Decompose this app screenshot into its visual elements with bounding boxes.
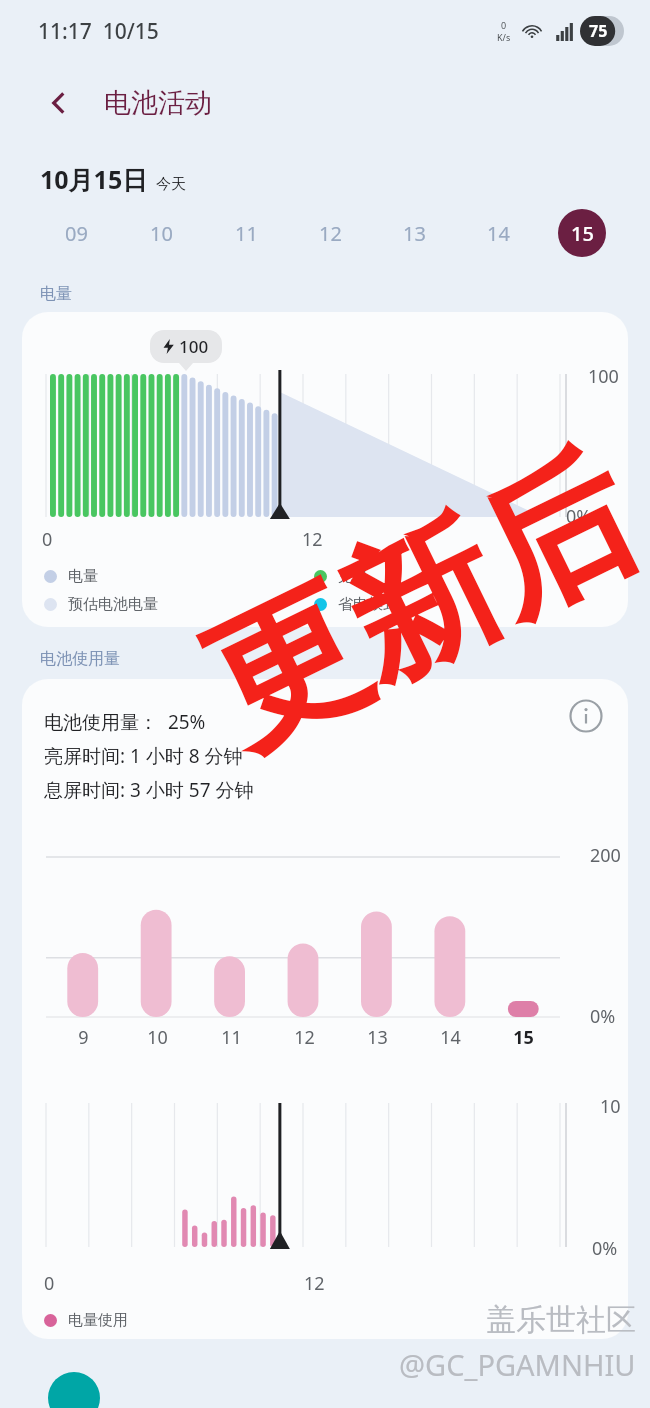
staticText: 更新后 — [177, 419, 650, 786]
staticText: 10月15日 — [40, 162, 148, 196]
staticText: 100 — [179, 335, 209, 358]
staticText: 息屏时间: 3 小时 57 分钟 — [44, 777, 254, 803]
staticText: 75 — [589, 20, 608, 42]
button[interactable]: 15 — [540, 202, 624, 264]
staticText: 0% — [566, 504, 592, 529]
staticText: 12 — [319, 220, 342, 247]
staticText: 电量 — [40, 284, 72, 304]
staticText: 预估电池电量 — [68, 595, 158, 614]
staticText: 亮屏时间: 1 小时 8 分钟 — [44, 743, 243, 769]
button[interactable]: 100 — [22, 312, 628, 627]
staticText: 充电 — [338, 567, 368, 586]
staticText: 15 — [513, 1025, 534, 1050]
staticText: 10 — [147, 1025, 168, 1050]
staticText: 9 — [78, 1025, 89, 1050]
staticText: 14 — [487, 220, 510, 247]
staticText: 11:17 10/15 — [38, 17, 159, 46]
button[interactable]: 14 — [456, 202, 540, 264]
staticText: 12 — [294, 1025, 315, 1050]
button[interactable]: 12 — [288, 202, 372, 264]
staticText: 盖乐世社区 — [486, 1301, 636, 1339]
staticText: 电量 — [68, 567, 98, 586]
staticText: 今天 — [156, 175, 186, 194]
staticText: 电池活动 — [104, 86, 212, 120]
staticText: 10 — [150, 220, 173, 247]
staticText: 电池使用量 — [40, 649, 120, 669]
staticText: 0 — [44, 1271, 55, 1296]
button[interactable]: Info — [566, 696, 606, 736]
staticText: K/s — [497, 31, 511, 43]
button[interactable]: 13 — [372, 202, 456, 264]
staticText: 14 — [440, 1025, 461, 1050]
staticText: 13 — [367, 1025, 388, 1050]
button[interactable]: 11 — [204, 202, 288, 264]
staticText: 200 — [590, 843, 621, 868]
staticText: 11 — [221, 1025, 242, 1050]
staticText: 15 — [571, 220, 594, 247]
staticText: 电池使用量： 25% — [44, 709, 206, 735]
button[interactable]: Back — [36, 80, 82, 126]
staticText: 省电模式 — [338, 595, 398, 614]
staticText: 电量使用 — [68, 1311, 128, 1330]
staticText: 10 — [600, 1094, 621, 1119]
staticText: 0% — [592, 1236, 618, 1261]
staticText: 12 — [302, 527, 323, 552]
staticText: 12 — [304, 1271, 325, 1296]
button[interactable]: 10 — [119, 202, 204, 264]
staticText: 0 — [501, 19, 507, 31]
staticText: 13 — [403, 220, 426, 247]
button[interactable]: 电池使用量： 25% — [22, 679, 628, 1339]
staticText: 0 — [42, 527, 53, 552]
staticText: 0% — [590, 1004, 616, 1029]
staticText: @GC_PGAMNHIU — [399, 1345, 636, 1384]
staticText: 09 — [65, 220, 88, 247]
staticText: 11 — [235, 220, 258, 247]
staticText: 100 — [588, 364, 619, 389]
button[interactable]: 09 — [34, 202, 119, 264]
